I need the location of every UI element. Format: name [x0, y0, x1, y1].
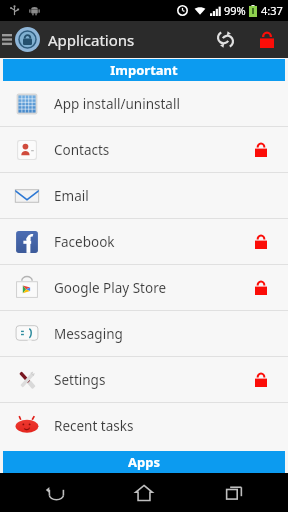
button[interactable]: Recent tasks: [0, 403, 288, 448]
staticText: Apps: [128, 453, 160, 471]
staticText: Important: [110, 61, 178, 79]
button[interactable]: Refresh: [204, 21, 246, 58]
staticText: Messaging: [54, 325, 255, 343]
button[interactable]: Facebook: [0, 219, 288, 264]
button[interactable]: App install/uninstall: [0, 81, 288, 126]
button[interactable]: App lock: [14, 26, 41, 53]
button[interactable]: Settings: [0, 357, 288, 402]
button[interactable]: Navigation drawer: [0, 21, 14, 58]
button[interactable]: Back: [20, 473, 90, 512]
button[interactable]: Apps: [3, 451, 285, 473]
button[interactable]: Important: [3, 59, 285, 81]
staticText: Settings: [54, 371, 255, 389]
staticText: Contacts: [54, 141, 255, 159]
button[interactable]: Home: [109, 473, 179, 512]
staticText: App install/uninstall: [54, 95, 255, 113]
staticText: Applications: [48, 30, 135, 50]
staticText: Email: [54, 187, 255, 205]
button[interactable]: Contacts: [0, 127, 288, 172]
button[interactable]: Recent apps: [199, 473, 269, 512]
button[interactable]: Email: [0, 173, 288, 218]
staticText: Facebook: [54, 233, 255, 251]
staticText: Google Play Store: [54, 279, 255, 297]
staticText: 4:37: [261, 3, 283, 18]
staticText: Recent tasks: [54, 417, 255, 435]
button[interactable]: Google Play Store: [0, 265, 288, 310]
button[interactable]: Lock: [246, 21, 288, 58]
button[interactable]: Messaging: [0, 311, 288, 356]
staticText: 99%: [224, 3, 246, 18]
